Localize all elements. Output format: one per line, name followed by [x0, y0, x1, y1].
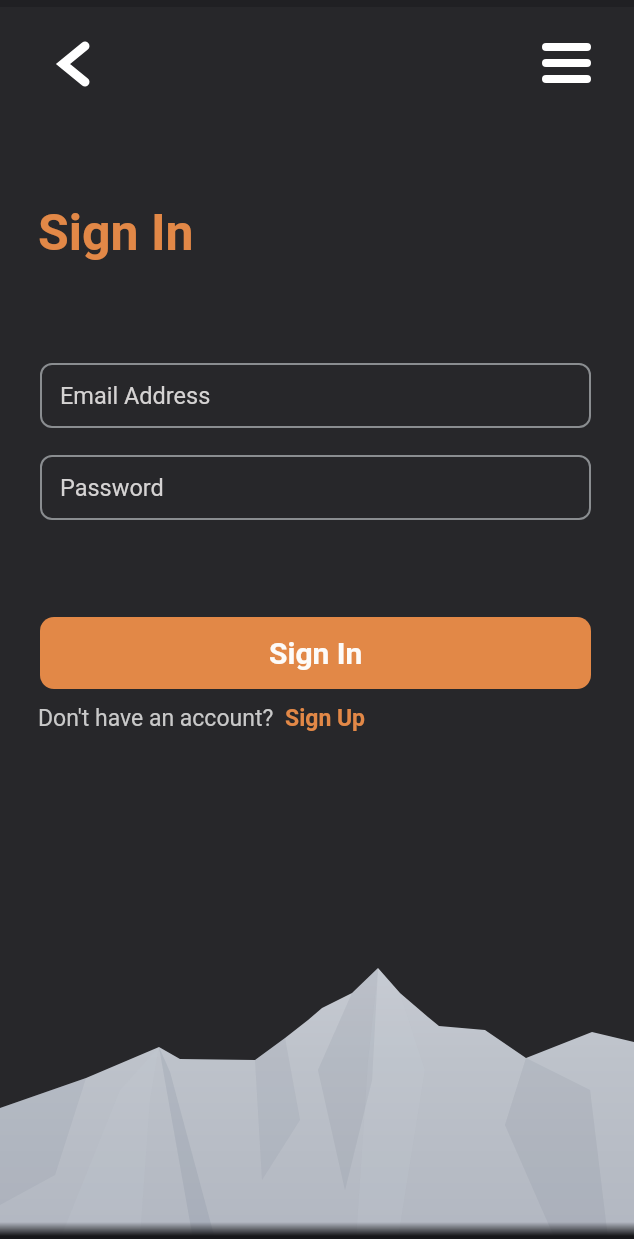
button[interactable]: Password — [40, 455, 591, 520]
staticText: Password — [60, 474, 164, 502]
button[interactable] — [50, 32, 98, 96]
button[interactable] — [534, 35, 600, 91]
staticText: Sign Up — [285, 705, 366, 732]
button[interactable]: Sign Up — [285, 705, 366, 732]
button[interactable]: Sign In — [40, 617, 591, 689]
button[interactable]: Email Address — [40, 363, 591, 428]
staticText: Don't have an account? — [38, 705, 274, 732]
staticText: Email Address — [60, 382, 211, 410]
staticText: Sign In — [269, 636, 363, 671]
staticText: Sign In — [38, 204, 194, 263]
